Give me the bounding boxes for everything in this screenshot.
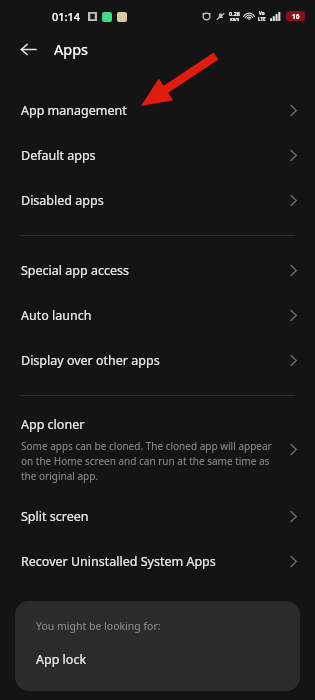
staticText: Apps xyxy=(54,39,89,59)
button[interactable]: App cloner xyxy=(0,404,315,494)
staticText: App lock xyxy=(36,651,87,668)
button[interactable]: Display over other apps xyxy=(0,338,315,383)
button[interactable]: You might be looking for: xyxy=(15,601,300,691)
staticText: 0.28 xyxy=(229,10,240,17)
button[interactable]: Special app access xyxy=(0,248,315,293)
staticText: KB/S xyxy=(230,17,240,22)
staticText: Default apps xyxy=(21,147,96,164)
staticText: Some apps can be cloned. The cloned app … xyxy=(21,439,275,483)
staticText: You might be looking for: xyxy=(36,619,161,633)
staticText: Disabled apps xyxy=(21,192,104,209)
staticText: Special app access xyxy=(21,262,129,279)
button[interactable]: Auto launch xyxy=(0,293,315,338)
staticText: Vo xyxy=(259,10,265,16)
button[interactable]: App management xyxy=(0,88,315,133)
button[interactable]: Default apps xyxy=(0,133,315,178)
staticText: App cloner xyxy=(21,416,85,433)
staticText: 16 xyxy=(292,12,300,21)
button[interactable]: Disabled apps xyxy=(0,178,315,223)
staticText: Display over other apps xyxy=(21,352,160,369)
staticText: Recover Uninstalled System Apps xyxy=(21,553,216,570)
staticText: LTE xyxy=(258,16,266,22)
staticText: Auto launch xyxy=(21,307,92,324)
staticText: App management xyxy=(21,102,127,119)
staticText: Split screen xyxy=(21,508,89,525)
button[interactable]: Back xyxy=(14,35,42,63)
button[interactable]: Split screen xyxy=(0,494,315,539)
staticText: 01:14 xyxy=(52,9,81,24)
button[interactable]: Recover Uninstalled System Apps xyxy=(0,539,315,584)
